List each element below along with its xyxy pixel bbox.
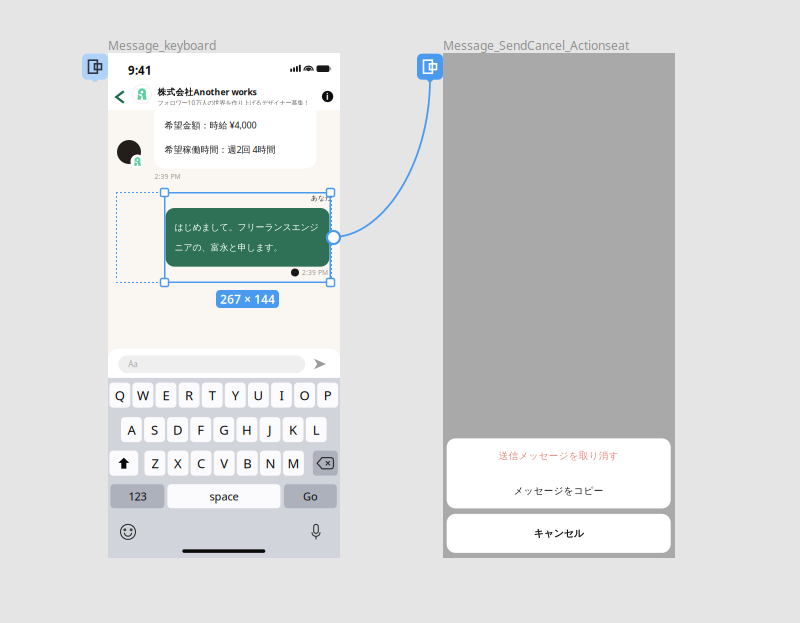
staticText: 2:39 PM: [302, 268, 328, 277]
button[interactable]: Y: [225, 383, 246, 408]
staticText: 123: [128, 489, 146, 504]
staticText: 株式会社Another works: [157, 86, 256, 98]
button[interactable]: 送信メッセージを取り消す: [447, 438, 671, 473]
staticText: 送信メッセージを取り消す: [499, 450, 619, 462]
staticText: あなた: [311, 194, 332, 202]
staticText: Message_keyboard: [108, 37, 216, 53]
button[interactable]: 123: [110, 484, 164, 508]
staticText: X: [174, 454, 182, 472]
button[interactable]: I: [271, 383, 292, 408]
staticText: 267 × 144: [220, 291, 275, 307]
button[interactable]: C: [191, 451, 211, 476]
staticText: C: [197, 454, 205, 472]
button[interactable]: Shift: [109, 451, 138, 476]
staticText: O: [300, 386, 310, 404]
staticText: T: [209, 386, 216, 404]
staticText: H: [242, 421, 252, 438]
button[interactable]: W: [132, 383, 153, 408]
staticText: Go: [303, 489, 318, 504]
button[interactable]: H: [236, 417, 257, 442]
button[interactable]: Info: [319, 87, 337, 105]
button[interactable]: J: [260, 417, 280, 442]
staticText: F: [197, 421, 204, 438]
button[interactable]: T: [202, 383, 223, 408]
button[interactable]: メッセージをコピー: [447, 473, 671, 508]
staticText: Message_SendCancel_Actionseat: [443, 37, 629, 53]
button[interactable]: O: [294, 383, 315, 408]
button[interactable]: A: [121, 417, 142, 442]
staticText: はじめまして。フリーランスエンジニアの、富永と申します。: [174, 221, 318, 253]
button[interactable]: P: [317, 383, 338, 408]
staticText: Aa: [128, 359, 137, 370]
button[interactable]: Send: [309, 353, 331, 375]
button[interactable]: K: [283, 417, 303, 442]
staticText: J: [268, 421, 272, 438]
button[interactable]: B: [237, 451, 258, 476]
button[interactable]: E: [156, 383, 176, 408]
staticText: Q: [115, 386, 125, 404]
staticText: 希望金額：時給 ¥4,000: [164, 119, 256, 131]
button[interactable]: D: [167, 417, 188, 442]
staticText: 希望稼働時間：週2回 4時間: [164, 143, 275, 156]
staticText: N: [265, 454, 275, 472]
staticText: i: [326, 91, 329, 102]
button[interactable]: Delete: [313, 451, 338, 476]
staticText: space: [209, 489, 238, 504]
button[interactable]: Go: [284, 484, 337, 508]
staticText: B: [243, 454, 251, 472]
button[interactable]: R: [179, 383, 199, 408]
staticText: Y: [232, 386, 239, 404]
staticText: U: [253, 386, 263, 404]
staticText: L: [313, 421, 320, 438]
staticText: 9:41: [128, 62, 152, 78]
button[interactable]: F: [190, 417, 211, 442]
button[interactable]: X: [168, 451, 188, 476]
staticText: K: [289, 421, 297, 438]
staticText: フォロワー10万人の世界を作り上げるデザイナー募集！: [157, 98, 309, 107]
staticText: Z: [151, 454, 158, 472]
staticText: S: [151, 421, 158, 438]
button[interactable]: Emoji: [116, 521, 140, 543]
staticText: D: [173, 421, 182, 438]
button[interactable]: G: [213, 417, 234, 442]
button[interactable]: Back: [109, 84, 131, 110]
button[interactable]: Z: [144, 451, 165, 476]
staticText: メッセージをコピー: [514, 485, 604, 497]
button[interactable]: キャンセル: [447, 514, 671, 553]
button[interactable]: S: [144, 417, 165, 442]
staticText: M: [287, 454, 299, 472]
button[interactable]: Q: [109, 383, 130, 408]
staticText: E: [162, 386, 169, 404]
button[interactable]: M: [283, 451, 304, 476]
staticText: キャンセル: [534, 527, 584, 540]
button[interactable]: Dictation: [304, 521, 328, 543]
staticText: G: [219, 421, 228, 438]
staticText: R: [185, 386, 193, 404]
button[interactable]: N: [260, 451, 281, 476]
staticText: V: [220, 454, 228, 472]
staticText: 2:39 PM: [154, 172, 180, 181]
button[interactable]: U: [248, 383, 269, 408]
staticText: W: [137, 386, 149, 404]
staticText: P: [324, 386, 332, 404]
button[interactable]: V: [214, 451, 235, 476]
button[interactable]: L: [306, 417, 327, 442]
staticText: I: [279, 386, 283, 404]
button[interactable]: space: [167, 484, 280, 508]
staticText: A: [127, 421, 135, 438]
